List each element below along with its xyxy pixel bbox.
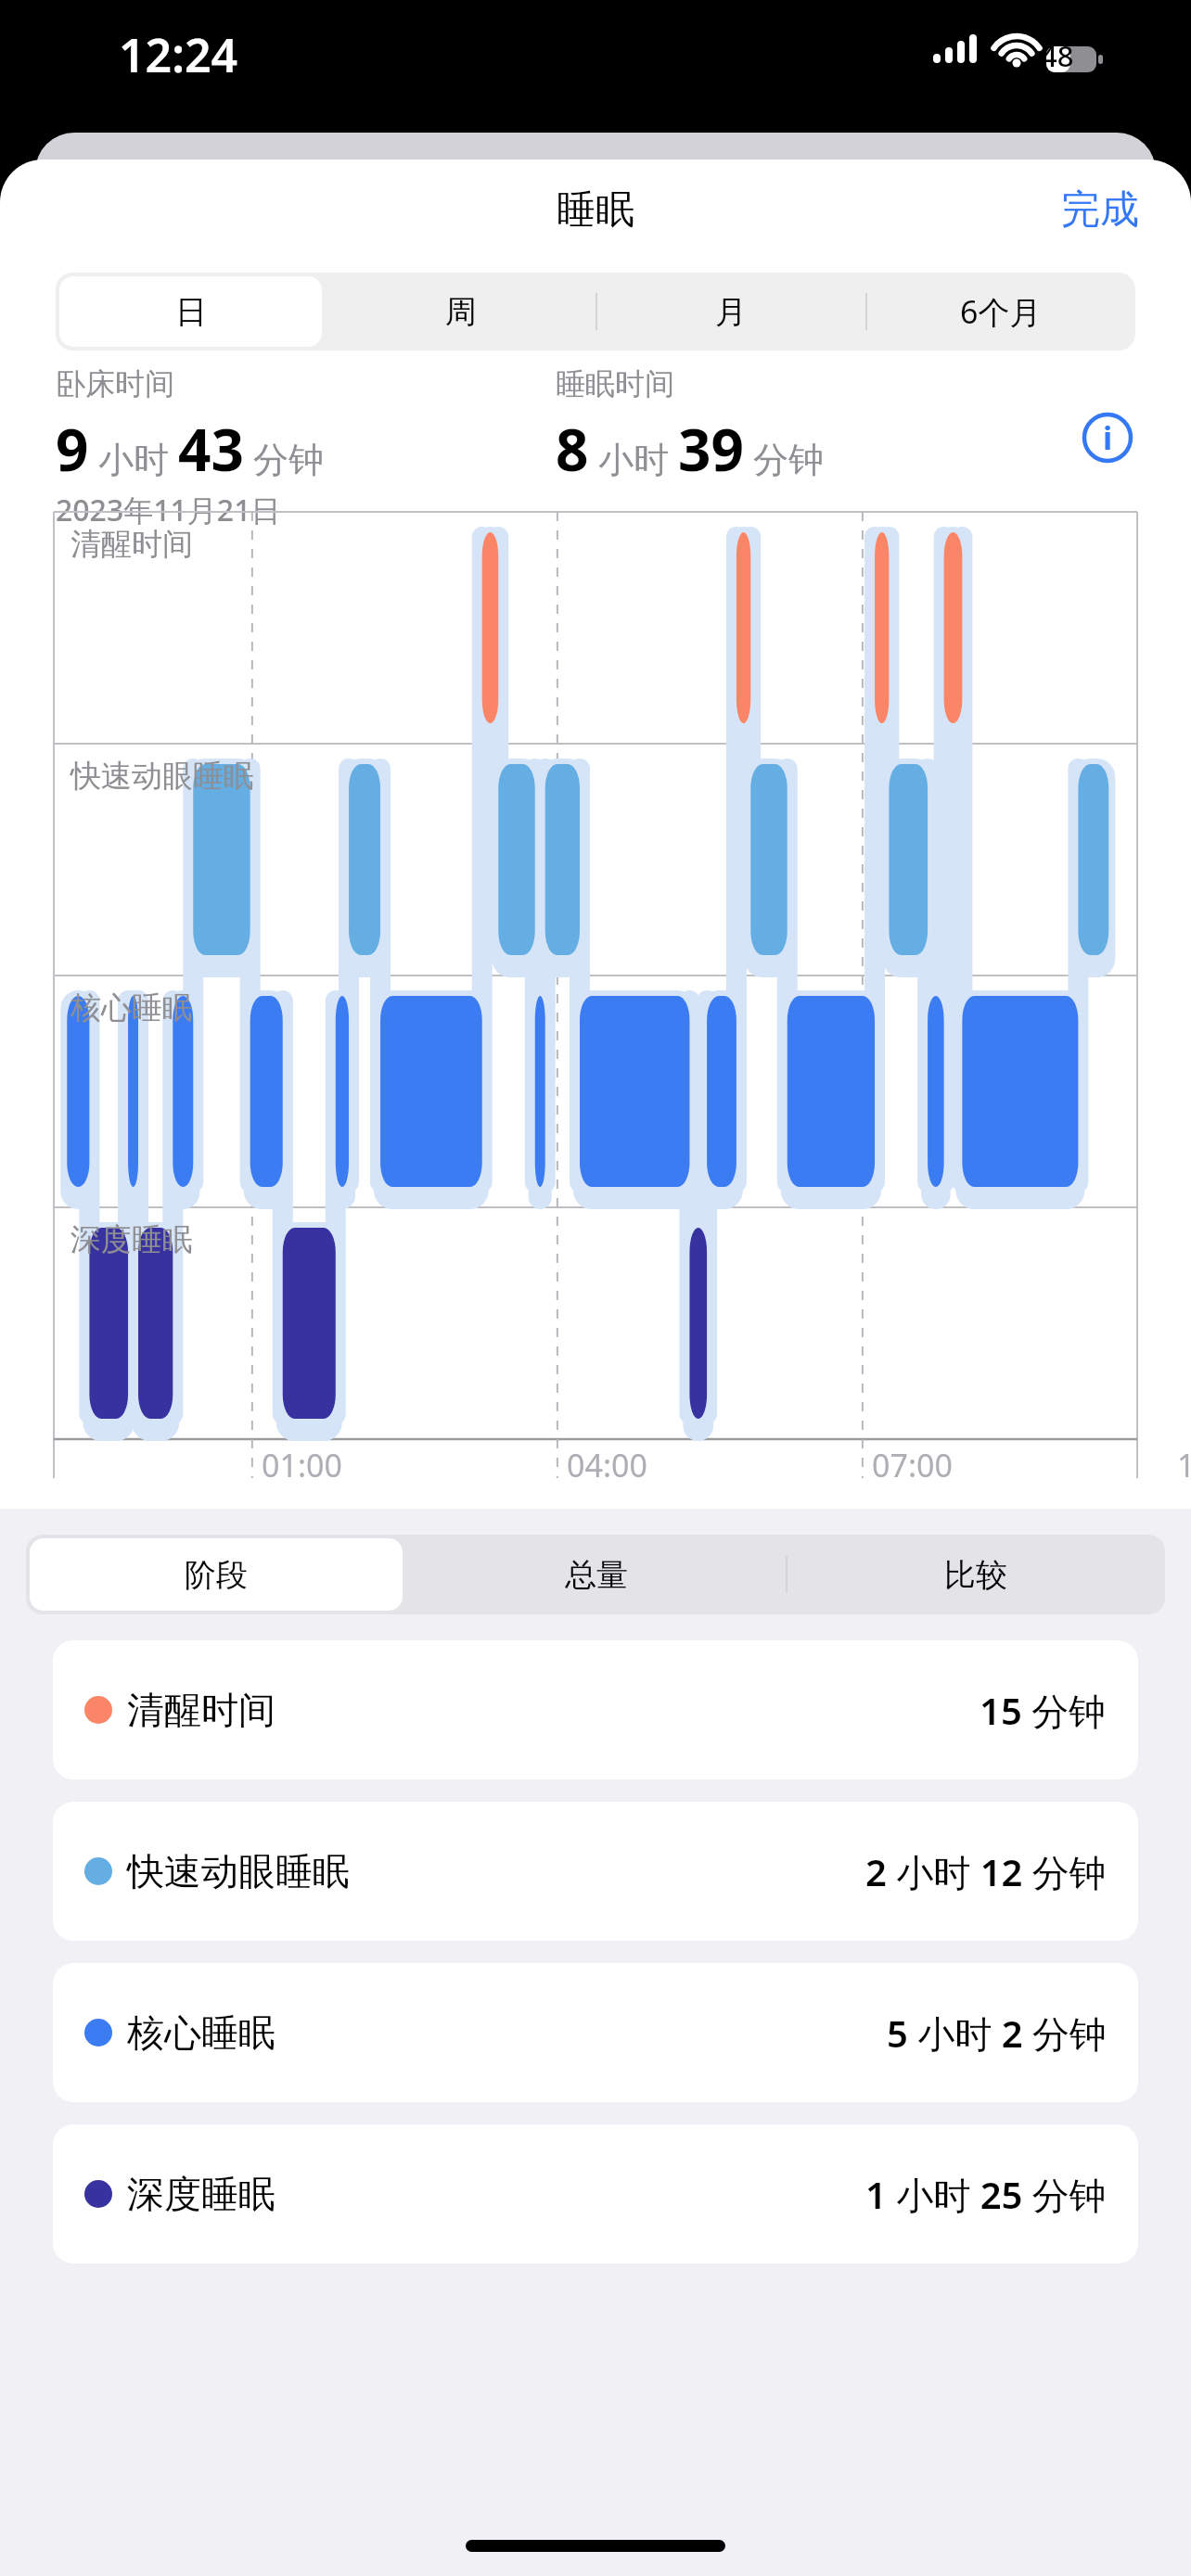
staticText: 深度睡眠: [70, 1220, 193, 1259]
staticText: 清醒时间: [70, 525, 193, 564]
staticText: 6个月: [960, 290, 1042, 333]
staticText: 分钟: [244, 434, 324, 482]
staticText: 39: [678, 410, 744, 488]
button[interactable]: 总量: [406, 1535, 786, 1614]
staticText: 1 小时 25 分钟: [865, 2169, 1107, 2220]
staticText: 9: [56, 410, 89, 488]
staticText: 比较: [944, 1555, 1007, 1595]
staticText: 15 分钟: [980, 1685, 1107, 1736]
staticText: 12:24: [119, 23, 238, 86]
staticText: 清醒时间: [127, 1687, 275, 1733]
button[interactable]: 阶段: [26, 1535, 406, 1614]
staticText: 睡眠时间: [556, 365, 674, 402]
button[interactable]: 月: [595, 273, 865, 351]
staticText: 2 小时 12 分钟: [865, 1846, 1107, 1897]
staticText: 阶段: [185, 1555, 248, 1595]
staticText: 小时: [89, 434, 178, 482]
button[interactable]: 周: [326, 273, 595, 351]
staticText: 04:00: [567, 1444, 647, 1486]
staticText: 月: [715, 292, 747, 332]
staticText: 睡眠: [557, 185, 634, 235]
button[interactable]: 6个月: [865, 273, 1135, 351]
staticText: 10:00: [1177, 1444, 1191, 1486]
staticText: 快速动眼睡眠: [70, 757, 254, 796]
staticText: 周: [445, 292, 477, 332]
staticText: 核心睡眠: [127, 2009, 275, 2056]
staticText: 小时: [589, 434, 678, 482]
staticText: i: [1103, 416, 1113, 459]
staticText: 43: [178, 410, 244, 488]
button[interactable]: 快速动眼睡眠: [53, 1802, 1138, 1941]
staticText: 快速动眼睡眠: [127, 1848, 350, 1894]
button[interactable]: 比较: [786, 1535, 1165, 1614]
button[interactable]: 清醒时间: [53, 1640, 1138, 1779]
staticText: 日: [175, 292, 207, 332]
staticText: 总量: [565, 1555, 628, 1595]
staticText: 深度睡眠: [127, 2171, 275, 2217]
button[interactable]: 完成: [1009, 172, 1191, 248]
button[interactable]: 深度睡眠: [53, 2124, 1138, 2264]
staticText: 核心睡眠: [70, 988, 193, 1027]
button[interactable]: 核心睡眠: [53, 1963, 1138, 2102]
staticText: 5 小时 2 分钟: [887, 2008, 1107, 2059]
staticText: 2023年11月21日: [56, 490, 281, 530]
button[interactable]: 信息: [1080, 410, 1135, 465]
staticText: 完成: [1061, 185, 1139, 235]
staticText: 07:00: [872, 1444, 953, 1486]
staticText: 48: [1041, 36, 1074, 75]
button[interactable]: 日: [56, 273, 326, 351]
staticText: 分钟: [744, 434, 824, 482]
staticText: 8: [556, 410, 589, 488]
staticText: 01:00: [262, 1444, 342, 1486]
staticText: 卧床时间: [56, 365, 174, 402]
